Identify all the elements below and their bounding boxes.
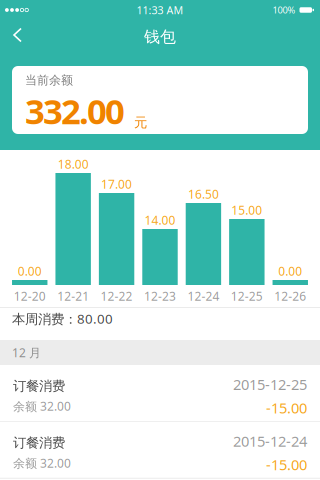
staticText: 16.50 bbox=[188, 186, 219, 202]
staticText: 100% bbox=[272, 4, 295, 16]
staticText: 12-20 bbox=[14, 288, 46, 304]
staticText: 12-25 bbox=[231, 288, 263, 304]
staticText: 11:33 AM bbox=[136, 3, 183, 17]
staticText: 332.00 bbox=[25, 88, 125, 134]
staticText: 0.00 bbox=[18, 263, 42, 279]
staticText: 14.00 bbox=[144, 212, 175, 228]
staticText: 本周消费：80.00 bbox=[12, 310, 113, 327]
button[interactable]: Back bbox=[0, 21, 23, 48]
staticText: 当前余额 bbox=[25, 73, 73, 88]
staticText: 订餐消费 bbox=[13, 435, 65, 451]
staticText: 12-21 bbox=[57, 288, 89, 304]
staticText: 12-24 bbox=[187, 288, 219, 304]
button[interactable]: 订餐消费 bbox=[0, 365, 320, 421]
staticText: 12-23 bbox=[144, 288, 176, 304]
staticText: 余额 32.00 bbox=[13, 455, 71, 471]
button[interactable]: 订餐消费 bbox=[0, 422, 320, 478]
staticText: 18.00 bbox=[58, 156, 89, 172]
staticText: 12 月 bbox=[12, 344, 41, 360]
staticText: 15.00 bbox=[231, 202, 262, 218]
staticText: 0.00 bbox=[278, 263, 302, 279]
staticText: 元 bbox=[134, 114, 147, 131]
staticText: -15.00 bbox=[266, 398, 307, 417]
staticText: 订餐消费 bbox=[13, 378, 65, 394]
staticText: 2015-12-24 bbox=[233, 431, 307, 451]
staticText: 12-22 bbox=[101, 288, 133, 304]
staticText: 12-26 bbox=[274, 288, 306, 304]
staticText: 17.00 bbox=[101, 176, 132, 192]
staticText: 钱包 bbox=[144, 27, 176, 47]
staticText: 余额 32.00 bbox=[13, 398, 71, 414]
staticText: 2015-12-25 bbox=[233, 374, 307, 394]
staticText: -15.00 bbox=[266, 455, 307, 474]
